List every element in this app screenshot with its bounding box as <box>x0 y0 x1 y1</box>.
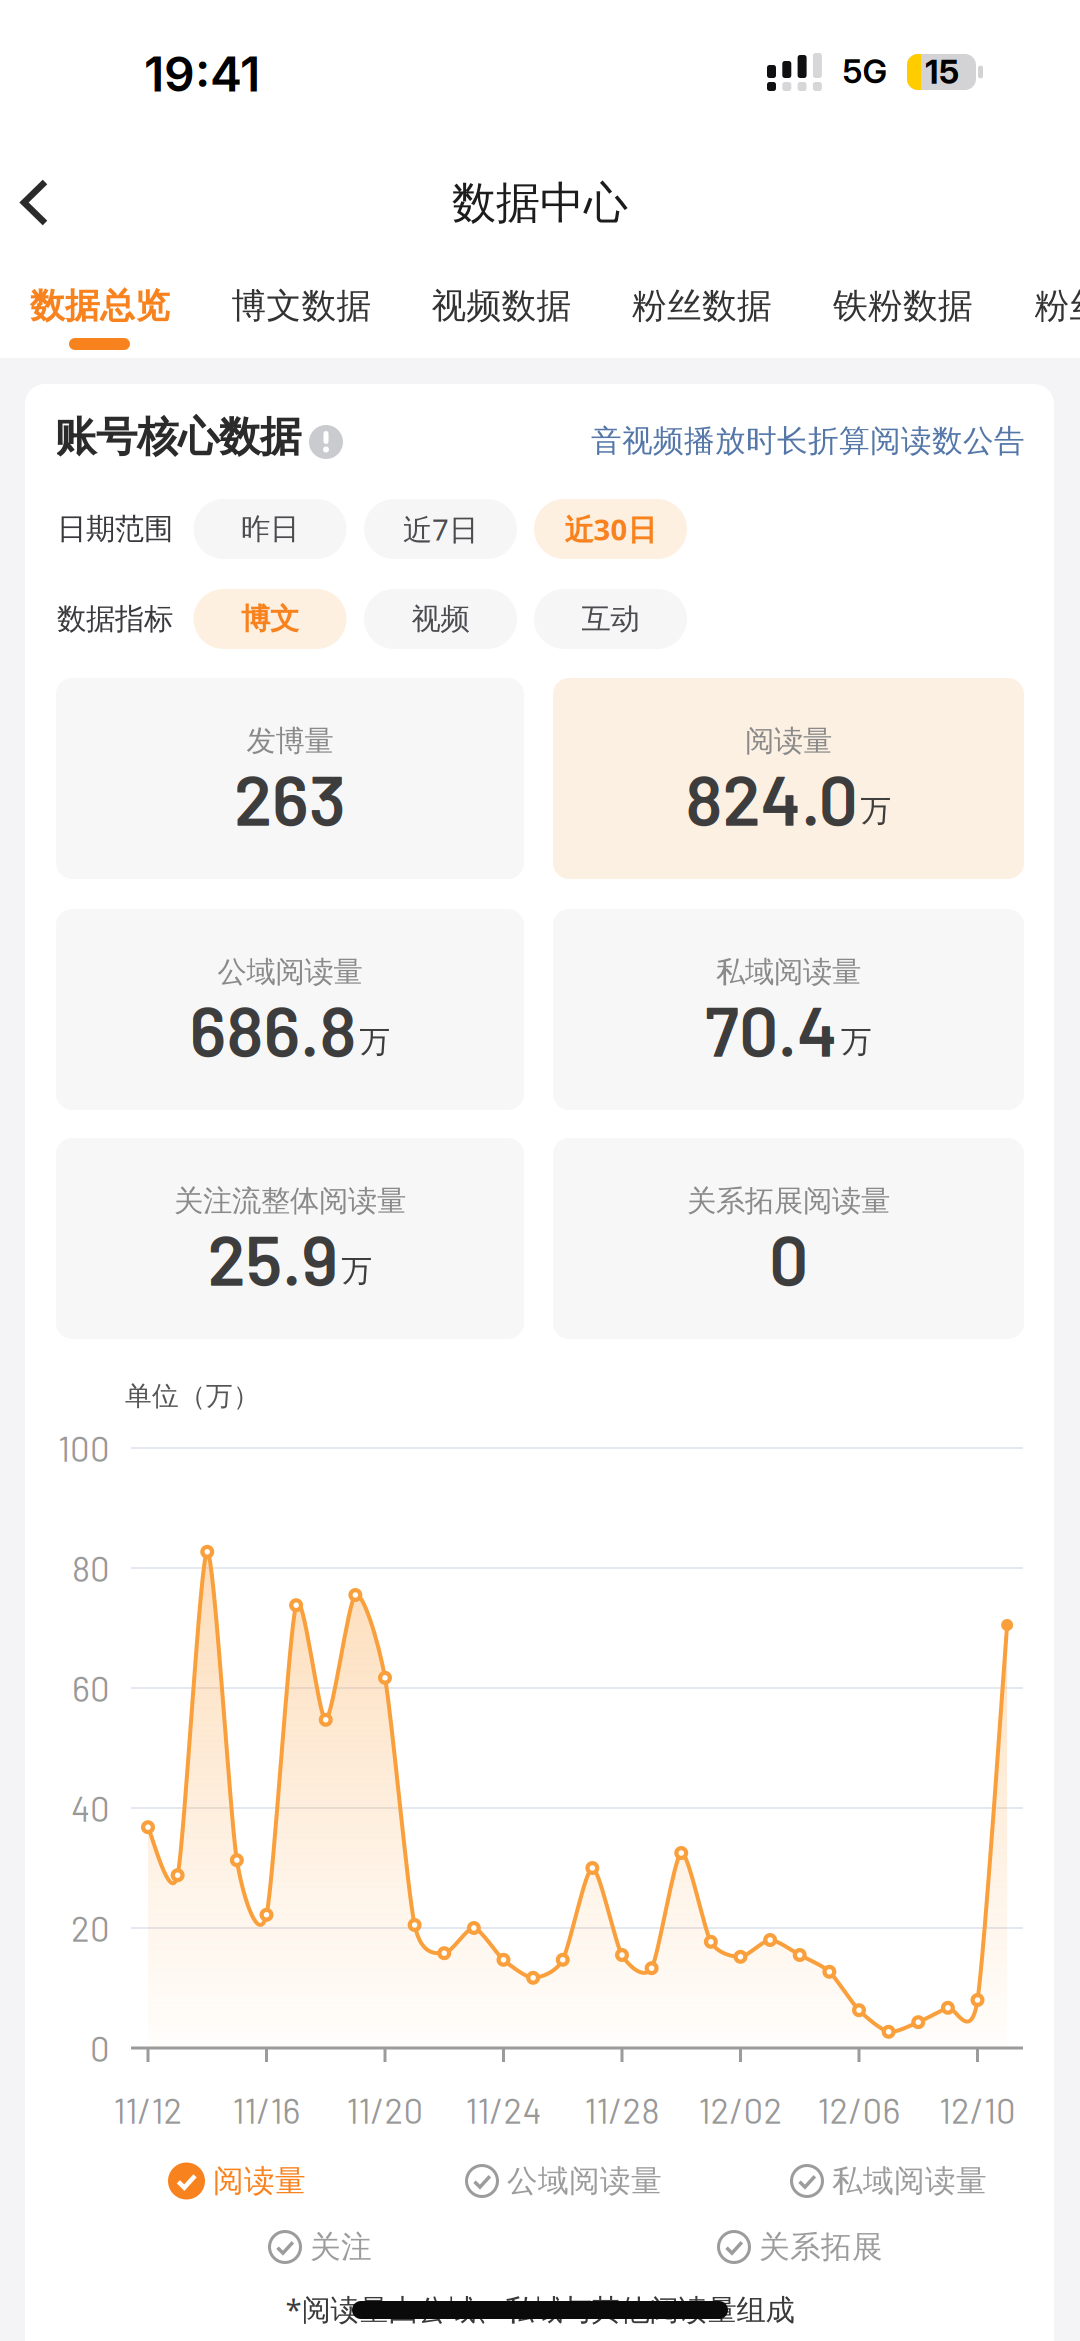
staticText: 40 <box>71 1787 110 1829</box>
staticText: 数据总览 <box>30 285 170 327</box>
staticText: 0 <box>90 2027 110 2069</box>
button[interactable]: 关系拓展 <box>717 2228 883 2266</box>
staticText: 11/12 <box>113 2089 182 2131</box>
button[interactable]: 近30日 <box>534 499 687 559</box>
staticText: 263 <box>234 756 346 840</box>
staticText: 关注 <box>310 2228 372 2266</box>
button[interactable]: 视频 <box>364 589 517 649</box>
staticText: 粉丝数据 <box>632 285 772 327</box>
staticText: 视频数据 <box>431 285 571 327</box>
staticText: 19:41 <box>144 45 260 103</box>
staticText: 11/24 <box>465 2089 541 2131</box>
button[interactable]: 阅读量 <box>168 2162 306 2200</box>
button[interactable]: 关注 <box>268 2228 372 2266</box>
staticText: 万 <box>841 1023 872 1061</box>
staticText: 25.9 <box>207 1216 338 1300</box>
staticText: 近30日 <box>564 509 656 548</box>
button[interactable]: Back <box>12 175 68 231</box>
staticText: 60 <box>72 1667 110 1709</box>
button[interactable]: Info <box>309 425 343 459</box>
button[interactable]: 博文 <box>193 589 346 649</box>
staticText: 账号核心数据 <box>55 412 301 462</box>
staticText: 公域阅读量 <box>217 954 362 990</box>
staticText: 11/16 <box>232 2089 300 2131</box>
button[interactable]: 博文数据 <box>226 254 376 358</box>
staticText: *阅读量由公域、私域与其他阅读量组成 <box>285 2289 794 2328</box>
staticText: 数据指标 <box>57 601 173 637</box>
staticText: 私域阅读量 <box>716 954 861 990</box>
button[interactable]: 粉丝数据 <box>627 254 777 358</box>
staticText: 万 <box>860 792 891 830</box>
button[interactable]: 音视频播放时长折算阅读数公告 <box>505 422 1025 460</box>
staticText: 0 <box>769 1216 808 1300</box>
button[interactable]: 互动 <box>534 589 687 649</box>
staticText: 铁粉数据 <box>833 285 973 327</box>
staticText: 15 <box>925 51 959 92</box>
staticText: 12/02 <box>698 2089 782 2131</box>
staticText: 686.8 <box>189 987 356 1071</box>
staticText: 粉丝服务 <box>1034 285 1080 327</box>
staticText: 日期范围 <box>57 511 173 547</box>
button[interactable]: 公域阅读量 <box>465 2162 662 2200</box>
button[interactable]: 私域阅读量 <box>790 2162 987 2200</box>
staticText: 关系拓展 <box>759 2228 883 2266</box>
staticText: 音视频播放时长折算阅读数公告 <box>591 422 1025 460</box>
staticText: 阅读量 <box>213 2162 306 2200</box>
staticText: 80 <box>72 1547 110 1589</box>
staticText: 公域阅读量 <box>507 2162 662 2200</box>
staticText: 昨日 <box>241 511 299 547</box>
staticText: 私域阅读量 <box>832 2162 987 2200</box>
staticText: 博文 <box>241 601 299 637</box>
staticText: 万 <box>341 1252 372 1290</box>
button[interactable]: 粉丝服务 <box>1029 254 1080 358</box>
staticText: 发博量 <box>246 723 333 759</box>
staticText: 视频 <box>411 601 469 637</box>
staticText: 关系拓展阅读量 <box>687 1183 890 1219</box>
button[interactable]: 视频数据 <box>426 254 576 358</box>
staticText: 单位（万） <box>125 1380 260 1412</box>
staticText: 近7日 <box>403 509 478 548</box>
staticText: 数据中心 <box>452 176 628 230</box>
staticText: 博文数据 <box>231 285 371 327</box>
staticText: 20 <box>71 1907 110 1949</box>
staticText: 11/28 <box>584 2089 659 2131</box>
staticText: 70.4 <box>705 987 838 1071</box>
button[interactable]: 昨日 <box>193 499 346 559</box>
staticText: 万 <box>359 1023 390 1061</box>
staticText: 阅读量 <box>745 723 832 759</box>
staticText: 100 <box>58 1427 110 1469</box>
button[interactable]: 近7日 <box>364 499 517 559</box>
staticText: 互动 <box>581 601 639 637</box>
staticText: 5G <box>842 51 887 91</box>
button[interactable]: 铁粉数据 <box>828 254 978 358</box>
button[interactable]: 数据总览 <box>25 254 175 358</box>
staticText: 12/06 <box>817 2089 900 2131</box>
staticText: 12/10 <box>939 2089 1016 2131</box>
staticText: 11/20 <box>346 2089 423 2131</box>
staticText: 关注流整体阅读量 <box>174 1183 406 1219</box>
staticText: 824.0 <box>685 756 857 840</box>
